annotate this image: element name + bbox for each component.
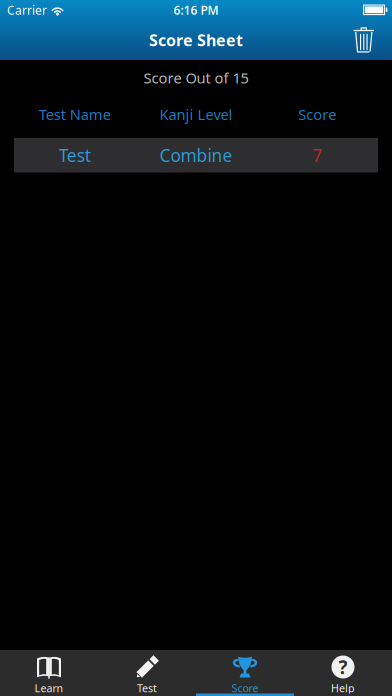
staticText: Carrier — [7, 2, 47, 18]
staticText: Combine — [159, 144, 232, 167]
staticText: Test — [59, 144, 91, 167]
staticText: Test — [137, 681, 157, 695]
staticText: Score Out of 15 — [143, 68, 248, 87]
button[interactable]: Score — [196, 650, 294, 696]
staticText: Kanji Level — [159, 104, 232, 124]
staticText: Help — [331, 681, 355, 695]
staticText: 6:16 PM — [173, 2, 218, 18]
button[interactable]: ? — [294, 650, 392, 696]
staticText: 7 — [312, 144, 322, 167]
staticText: Score — [231, 681, 258, 695]
button[interactable]: Delete all scores — [340, 20, 392, 60]
staticText: Test Name — [39, 104, 111, 124]
staticText: Score — [298, 104, 336, 124]
button[interactable]: Test — [98, 650, 196, 696]
staticText: ? — [338, 655, 347, 679]
button[interactable]: Test — [14, 138, 378, 172]
button[interactable]: Learn — [0, 650, 98, 696]
staticText: Learn — [34, 681, 63, 695]
staticText: Score Sheet — [149, 29, 243, 51]
